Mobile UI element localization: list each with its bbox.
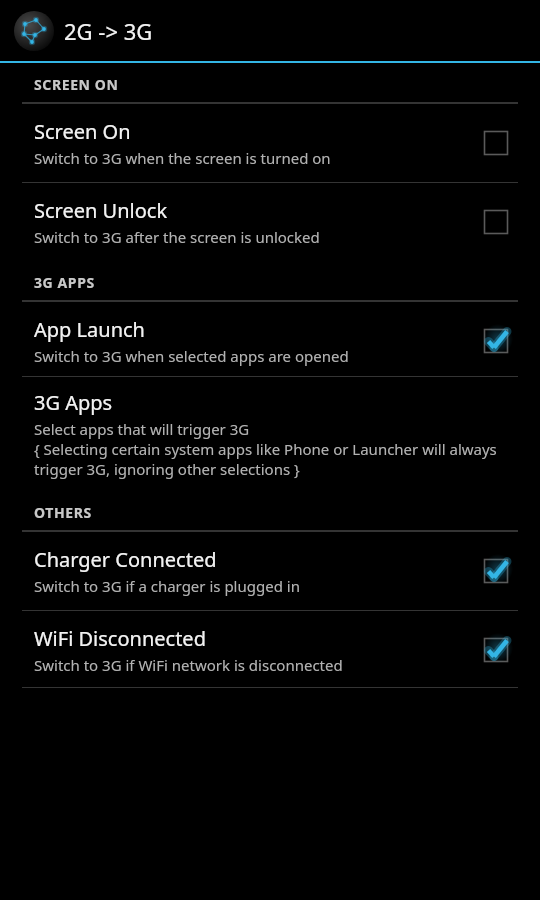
staticText: 3G APPS [34,273,95,292]
other: Checked [473,318,519,364]
other: Unchecked [473,120,519,166]
button[interactable]: 2G -> 3G [0,0,540,61]
staticText: Switch to 3G when selected apps are open… [34,346,349,366]
staticText: 3G Apps [34,389,113,416]
staticText: Screen Unlock [34,197,168,224]
staticText: Select apps that will trigger 3G { Selec… [34,419,512,479]
staticText: WiFi Disconnected [34,625,206,652]
button[interactable]: 3G Apps [0,377,540,491]
other: Checked [473,548,519,594]
staticText: Switch to 3G when the screen is turned o… [34,148,331,168]
button[interactable]: Screen On [0,104,540,182]
staticText: 2G -> 3G [64,16,153,46]
staticText: Switch to 3G after the screen is unlocke… [34,227,320,247]
button[interactable]: WiFi Disconnected [0,611,540,687]
staticText: OTHERS [34,503,92,522]
button[interactable]: App Launch [0,302,540,376]
staticText: Charger Connected [34,546,217,573]
staticText: App Launch [34,316,145,343]
staticText: SCREEN ON [34,75,119,94]
staticText: Screen On [34,118,131,145]
staticText: Switch to 3G if a charger is plugged in [34,576,300,596]
button[interactable]: Screen Unlock [0,183,540,261]
button[interactable]: Charger Connected [0,532,540,610]
other: Unchecked [473,199,519,245]
staticText: Switch to 3G if WiFi network is disconne… [34,655,343,675]
other: Checked [473,627,519,673]
